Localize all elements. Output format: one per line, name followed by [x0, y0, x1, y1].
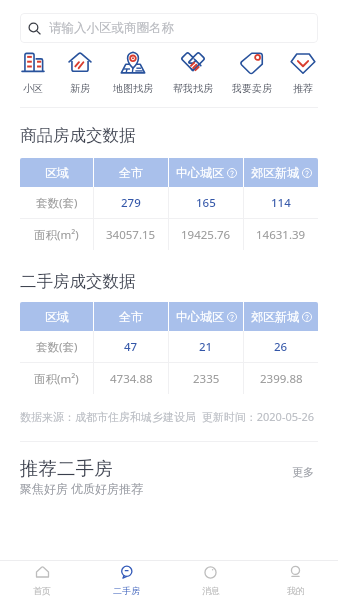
staticText: 我的: [287, 585, 305, 596]
staticText: 套数(套): [36, 195, 78, 211]
staticText: 114: [271, 195, 291, 211]
staticText: 推荐: [293, 82, 313, 95]
staticText: 请输入小区或商圈名称: [49, 20, 174, 36]
staticText: 19425.76: [181, 227, 231, 243]
staticText: 165: [196, 195, 216, 211]
staticText: 面积(m²): [34, 371, 79, 387]
staticText: 聚焦好房 优质好房推荐: [20, 480, 144, 496]
staticText: 47: [124, 339, 138, 355]
staticText: 26: [274, 339, 288, 355]
button[interactable]: 我的: [253, 561, 338, 600]
staticText: 首页: [33, 585, 51, 596]
staticText: 21: [199, 339, 213, 355]
button[interactable]: 请输入小区或商圈名称: [20, 13, 318, 43]
staticText: 2335: [193, 371, 220, 387]
staticText: 推荐二手房: [20, 457, 113, 480]
staticText: 地图找房: [113, 82, 153, 95]
staticText: 套数(套): [36, 339, 78, 355]
staticText: 更多: [292, 465, 314, 479]
staticText: 新房: [70, 82, 90, 95]
staticText: 面积(m²): [34, 227, 79, 243]
staticText: 郊区新城: [251, 165, 299, 180]
button[interactable]: 小区: [10, 50, 56, 95]
staticText: 二手房: [113, 585, 140, 596]
staticText: 2399.88: [260, 371, 303, 387]
staticText: 小区: [23, 82, 43, 95]
button[interactable]: 帮我找房: [170, 50, 216, 95]
staticText: 14631.39: [256, 227, 306, 243]
button[interactable]: 首页: [0, 561, 84, 600]
staticText: 商品房成交数据: [20, 125, 136, 146]
button[interactable]: 消息: [168, 561, 253, 600]
staticText: 消息: [202, 585, 220, 596]
staticText: 全市: [119, 165, 143, 180]
button[interactable]: 地图找房: [110, 50, 156, 95]
staticText: 4734.88: [110, 371, 153, 387]
staticText: 中心城区: [176, 309, 224, 324]
staticText: 中心城区: [176, 165, 224, 180]
staticText: 279: [121, 195, 141, 211]
staticText: 区域: [45, 165, 69, 180]
staticText: 数据来源：成都市住房和城乡建设局 更新时间：2020-05-26: [20, 409, 315, 424]
button[interactable]: 我要卖房: [229, 50, 275, 95]
button[interactable]: 更多: [288, 461, 318, 483]
staticText: 全市: [119, 309, 143, 324]
staticText: 区域: [45, 309, 69, 324]
button[interactable]: 推荐: [280, 50, 326, 95]
staticText: 二手房成交数据: [20, 271, 136, 292]
staticText: 郊区新城: [251, 309, 299, 324]
button[interactable]: 二手房: [84, 561, 168, 600]
staticText: 34057.15: [106, 227, 156, 243]
button[interactable]: 新房: [57, 50, 103, 95]
staticText: 我要卖房: [232, 82, 272, 95]
staticText: 帮我找房: [173, 82, 213, 95]
